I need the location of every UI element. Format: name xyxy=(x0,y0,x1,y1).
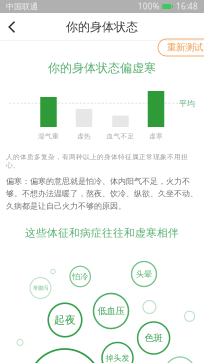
staticText: 你的身体状态偏虚寒 xyxy=(48,61,156,75)
staticText: 低血压 xyxy=(97,305,124,317)
staticText: 16:48 xyxy=(176,1,198,12)
staticText: 怕冷 xyxy=(72,272,88,281)
staticText: 你的身体状态 xyxy=(66,20,138,34)
staticText: 起夜 xyxy=(54,313,76,326)
staticText: 常腹泻 xyxy=(33,285,48,291)
staticText: 湿气重 xyxy=(38,132,59,140)
staticText: 中国联通 xyxy=(6,2,38,11)
staticText: 平均 xyxy=(179,99,195,108)
staticText: 偏寒：偏寒的意思就是怕冷、体内阳气不足，火力不够。不想办法温暖了，熬夜、饮冷、纵… xyxy=(6,176,198,211)
staticText: 虚热 xyxy=(77,132,91,140)
staticText: 人的体质多复杂，有两种以上的身体特征属正常现象不用担心。 xyxy=(6,153,188,169)
staticText: 这些体征和病症往往和虚寒相伴 xyxy=(25,226,179,239)
staticText: 重新测试 xyxy=(167,42,203,53)
staticText: 血气不足 xyxy=(106,132,134,140)
staticText: 虚寒 xyxy=(149,132,163,140)
button[interactable]: Back xyxy=(0,14,25,40)
staticText: 头晕 xyxy=(136,269,152,279)
staticText: 100% xyxy=(138,1,160,12)
staticText: 掉头发 xyxy=(105,353,129,363)
staticText: 色斑 xyxy=(145,332,163,344)
button[interactable]: 重新测试 xyxy=(158,39,204,56)
